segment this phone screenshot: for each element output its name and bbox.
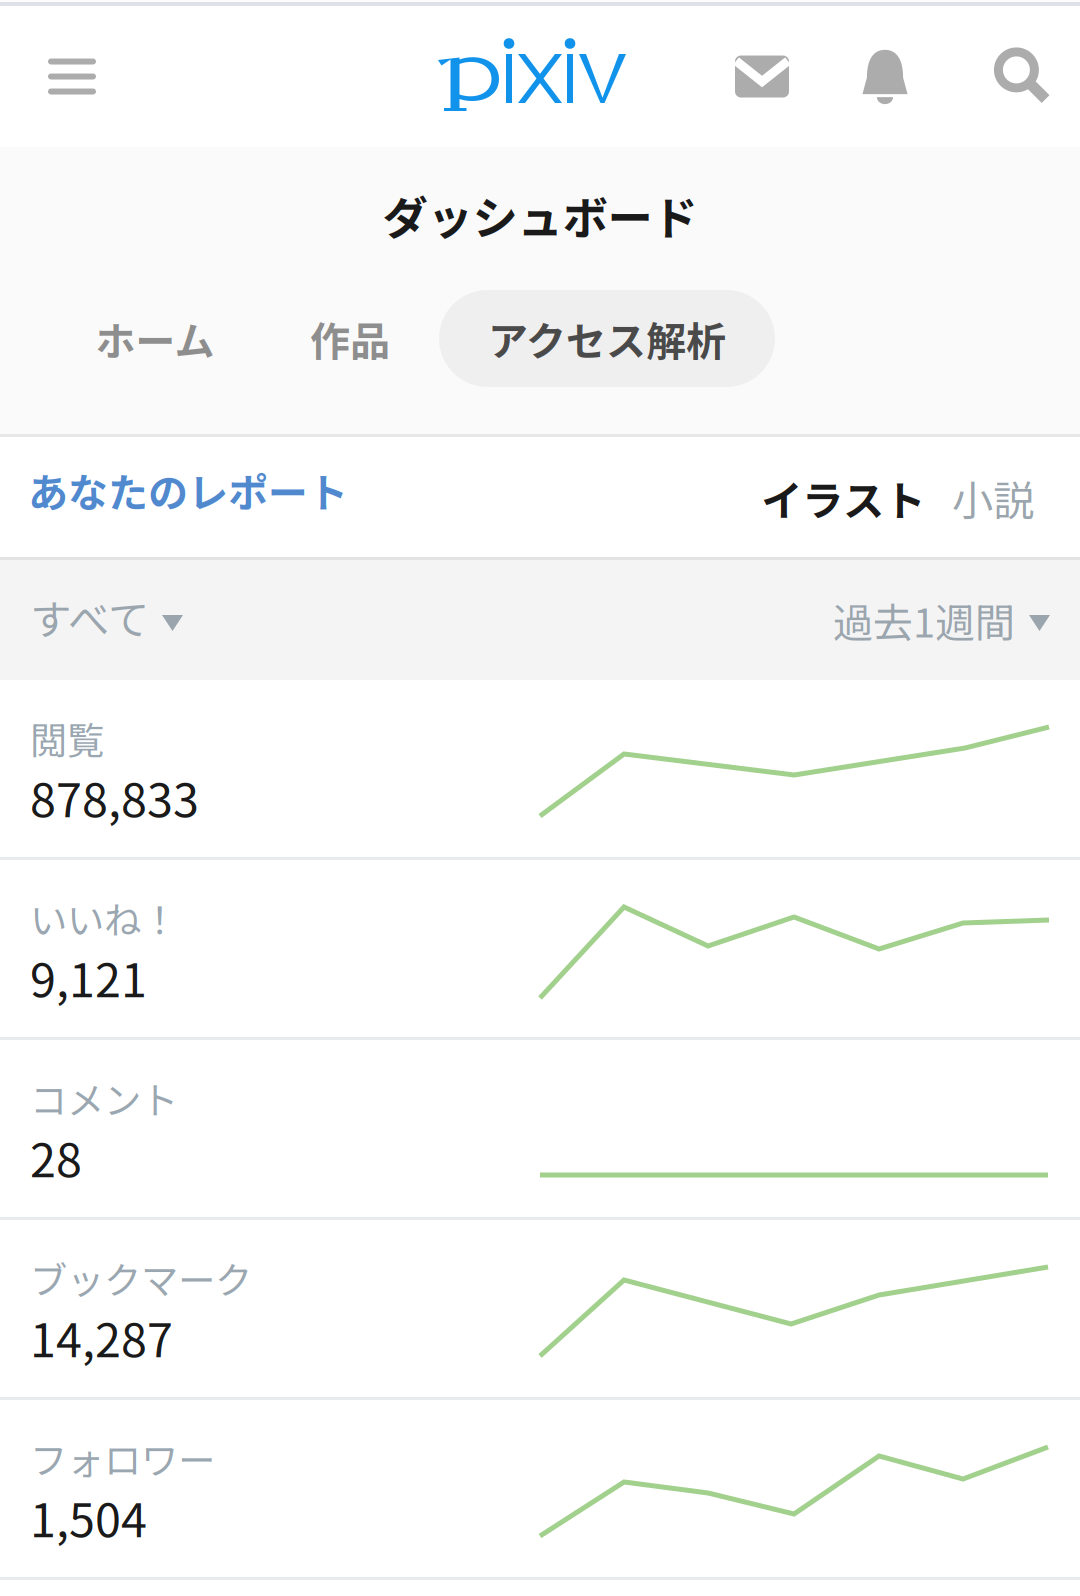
staticText: イラスト	[761, 468, 925, 528]
staticText: 878,833	[30, 763, 199, 831]
staticText: いいね！	[30, 891, 178, 945]
button[interactable]: 過去1週間	[833, 560, 1050, 680]
staticText: 14,287	[30, 1303, 173, 1371]
button[interactable]: Search	[973, 4, 1069, 145]
button[interactable]: Menu	[24, 6, 120, 147]
staticText: 28	[30, 1123, 82, 1191]
staticText: 小説	[952, 468, 1034, 528]
staticText: あなたのレポート	[28, 461, 348, 519]
button[interactable]: 作品	[300, 290, 400, 387]
staticText: 1,504	[30, 1483, 147, 1551]
button[interactable]: すべて	[30, 557, 183, 677]
button[interactable]: ホーム	[85, 290, 225, 387]
button[interactable]: pixiv home	[422, 4, 642, 145]
staticText: 9,121	[30, 943, 147, 1011]
staticText: 作品	[310, 309, 390, 367]
button[interactable]: Messages	[714, 6, 810, 147]
staticText: 過去1週間	[833, 591, 1015, 649]
button[interactable]: Notifications	[837, 6, 933, 147]
staticText: アクセス解析	[488, 309, 726, 367]
staticText: コメント	[30, 1071, 178, 1125]
staticText: 閲覧	[30, 711, 104, 765]
button[interactable]: アクセス解析	[439, 290, 775, 387]
staticText: ダッシュボード	[382, 182, 697, 248]
staticText: フォロワー	[30, 1431, 215, 1485]
button[interactable]: 小説	[946, 438, 1040, 558]
staticText: すべて	[30, 587, 149, 647]
staticText: ホーム	[95, 309, 214, 367]
button[interactable]: イラスト	[760, 438, 926, 558]
staticText: ブックマーク	[30, 1251, 252, 1305]
